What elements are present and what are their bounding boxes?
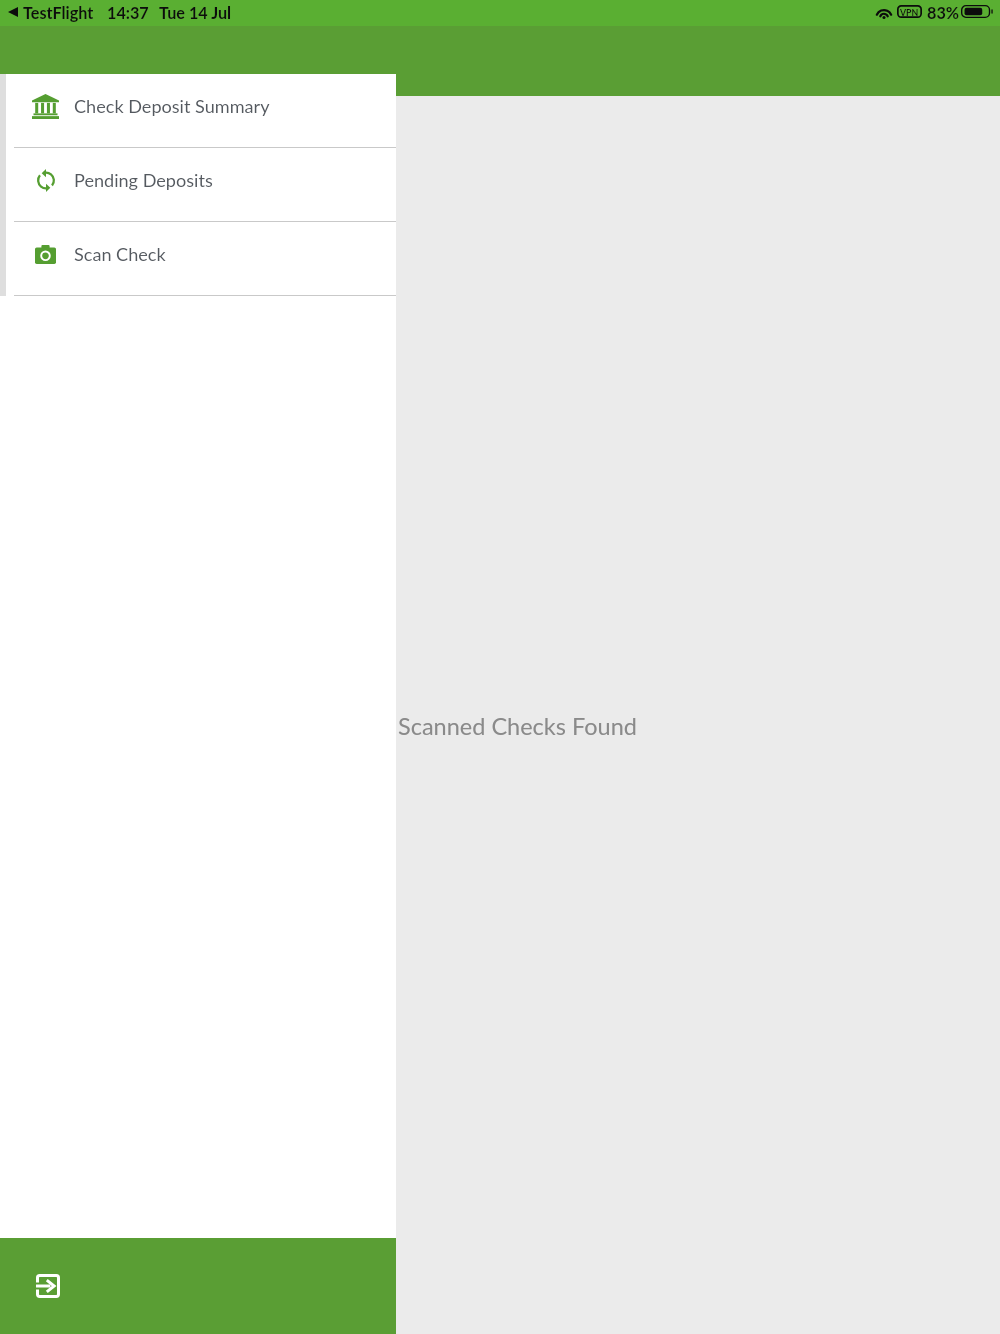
staticText: Scanned Checks Found	[398, 712, 637, 740]
button[interactable]: Pending Deposits	[0, 148, 396, 222]
button[interactable]: Log out	[0, 1238, 396, 1334]
staticText: 83%	[927, 3, 960, 22]
staticText: Check Deposit Summary	[74, 95, 270, 117]
button[interactable]: Scan Check	[0, 222, 396, 296]
staticText: Scan Check	[74, 243, 166, 265]
staticText: 14:37	[107, 3, 149, 22]
staticText: TestFlight	[23, 3, 94, 22]
staticText: Tue 14 Jul	[159, 3, 232, 22]
button[interactable]: Check Deposit Summary	[0, 74, 396, 148]
staticText: VPN	[900, 7, 919, 18]
staticText: Pending Deposits	[74, 169, 213, 191]
